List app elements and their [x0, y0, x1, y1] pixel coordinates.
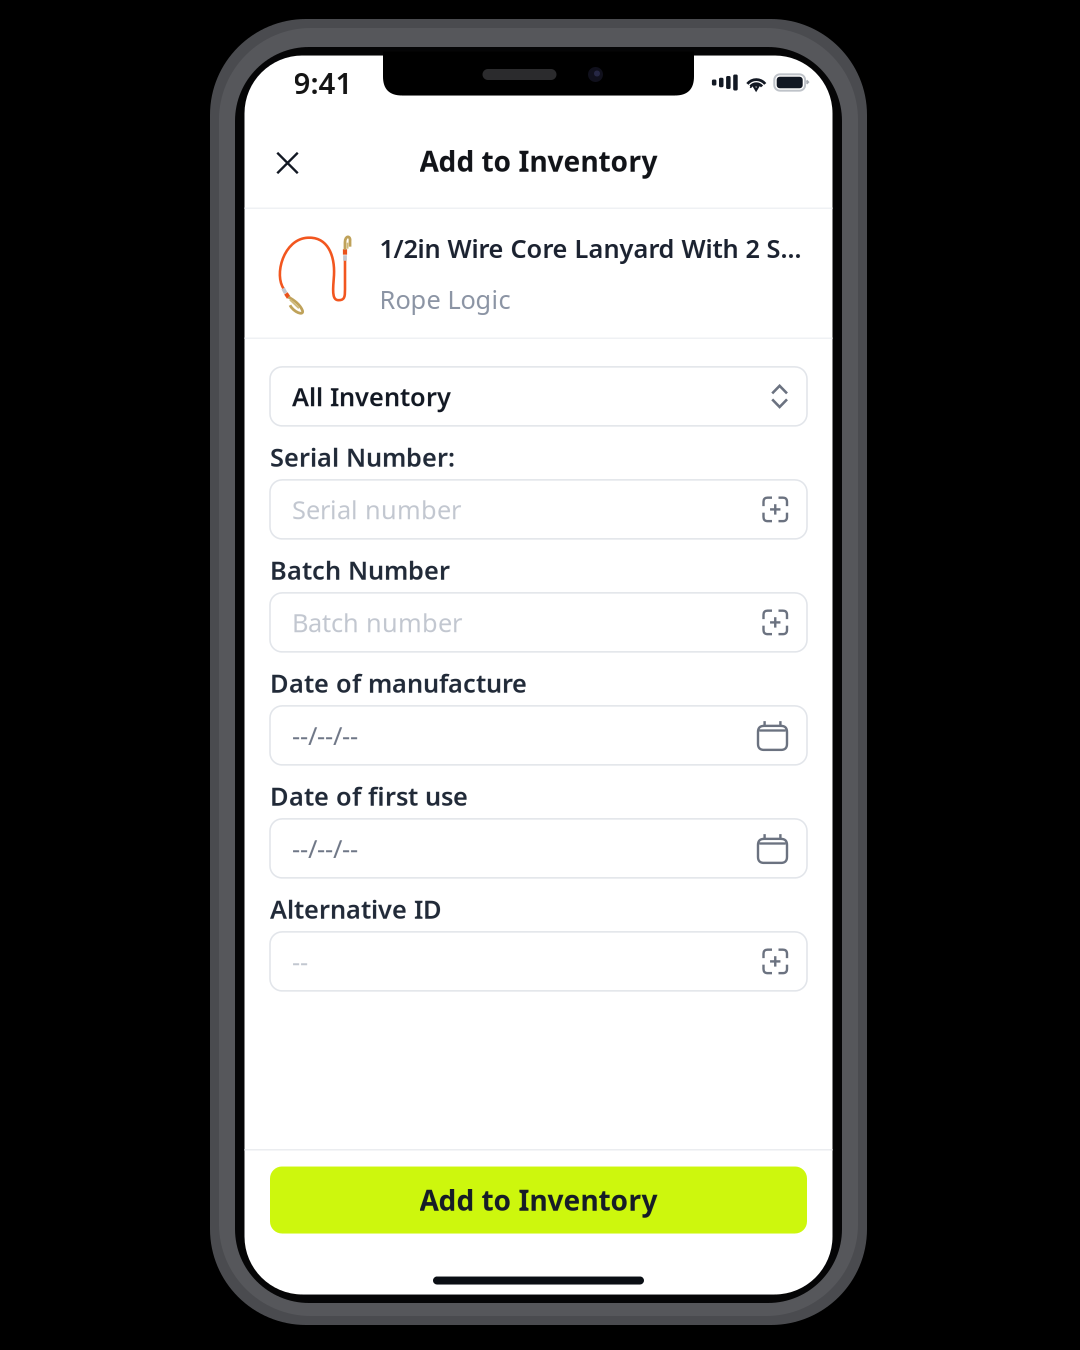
staticText: Date of first use: [270, 779, 468, 813]
staticText: 1/2in Wire Core Lanyard With 2 Steel Sna…: [379, 231, 805, 265]
staticText: Batch Number: [270, 553, 450, 587]
button[interactable]: 1/2in Wire Core Lanyard With 2 Steel Sna…: [244, 209, 832, 337]
staticText: Add to Inventory: [419, 142, 657, 180]
staticText: Add to Inventory: [419, 1181, 657, 1219]
button[interactable]: Close: [256, 132, 318, 194]
staticText: Serial Number:: [270, 440, 455, 474]
button[interactable]: Add to Inventory: [270, 1166, 807, 1233]
button[interactable]: --/--/--: [270, 706, 807, 765]
staticText: Alternative ID: [270, 892, 442, 926]
staticText: Date of manufacture: [270, 666, 527, 700]
button[interactable]: --/--/--: [270, 819, 807, 878]
staticText: 9:41: [293, 63, 352, 102]
staticText: Serial number: [292, 493, 461, 526]
button[interactable]: All Inventory: [270, 367, 807, 426]
staticText: All Inventory: [292, 380, 451, 413]
staticText: --/--/--: [292, 832, 358, 865]
staticText: Batch number: [292, 606, 462, 639]
button[interactable]: --: [270, 932, 807, 991]
button[interactable]: Batch number: [270, 593, 807, 652]
staticText: --: [292, 945, 308, 978]
staticText: Rope Logic: [379, 282, 510, 316]
button[interactable]: Serial number: [270, 480, 807, 539]
staticText: --/--/--: [292, 719, 358, 752]
